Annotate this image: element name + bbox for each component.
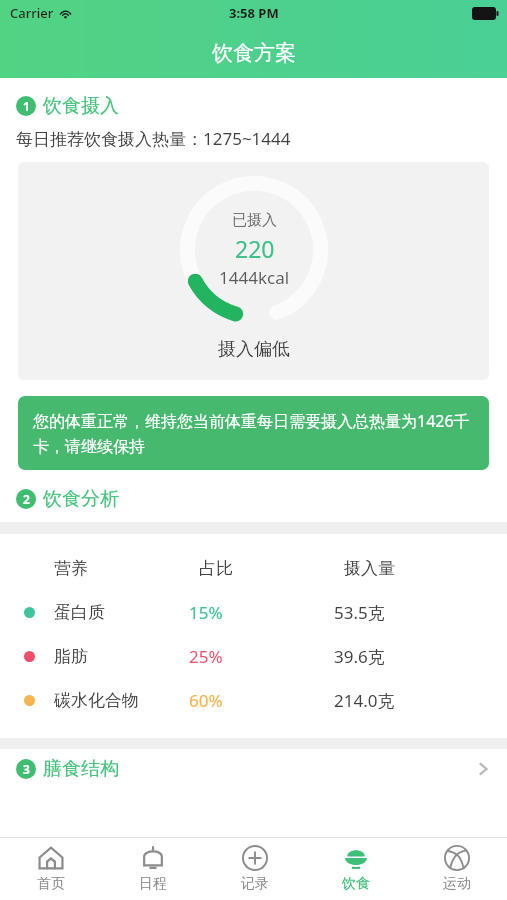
other: 饮食 — [343, 845, 369, 871]
staticText: 53.5克 — [334, 601, 385, 624]
button[interactable]: 记录 — [204, 838, 305, 900]
other: 首页 — [38, 845, 64, 871]
staticText: 1 — [23, 98, 30, 114]
staticText: 您的体重正常，维持您当前体重每日需要摄入总热量为1426千卡，请继续保持 — [33, 410, 474, 456]
other: 记录 — [242, 845, 268, 871]
button[interactable]: 饮食 — [305, 838, 406, 900]
staticText: 60% — [189, 689, 334, 712]
other: 运动 — [444, 845, 470, 871]
staticText: 220 — [235, 233, 275, 264]
button[interactable]: 您的体重正常，维持您当前体重每日需要摄入总热量为1426千卡，请继续保持 — [18, 396, 489, 470]
staticText: 占比 — [199, 558, 344, 579]
other: 日程 — [140, 845, 166, 871]
staticText: Carrier — [10, 4, 54, 22]
staticText: 膳食结构 — [43, 757, 119, 781]
staticText: 39.6克 — [334, 645, 385, 668]
staticText: 1444kcal — [219, 266, 290, 289]
button[interactable]: 1 — [0, 94, 507, 118]
staticText: 营养 — [54, 558, 199, 579]
staticText: 每日推荐饮食摄入热量：1275~1444 — [16, 127, 291, 150]
staticText: 25% — [189, 645, 334, 668]
staticText: 饮食方案 — [212, 40, 296, 66]
staticText: 饮食 — [342, 875, 370, 893]
button[interactable]: 蛋白质 — [0, 601, 507, 624]
staticText: 3 — [23, 761, 30, 777]
staticText: 运动 — [443, 875, 471, 893]
staticText: 摄入量 — [344, 558, 395, 579]
staticText: 脂肪 — [54, 646, 189, 667]
button[interactable]: 日程 — [102, 838, 204, 900]
staticText: 饮食摄入 — [43, 94, 119, 118]
button[interactable]: 3 — [0, 749, 507, 789]
button[interactable]: 首页 — [0, 838, 102, 900]
staticText: 首页 — [37, 875, 65, 893]
staticText: 日程 — [139, 875, 167, 893]
button[interactable]: 2 — [0, 487, 507, 511]
button[interactable]: 运动 — [406, 838, 507, 900]
staticText: 214.0克 — [334, 689, 395, 712]
staticText: 饮食分析 — [43, 487, 119, 511]
staticText: 记录 — [241, 875, 269, 893]
staticText: 3:58 PM — [229, 4, 279, 22]
staticText: 蛋白质 — [54, 602, 189, 623]
button[interactable]: 碳水化合物 — [0, 689, 507, 712]
button[interactable]: 脂肪 — [0, 645, 507, 668]
staticText: 2 — [23, 491, 30, 507]
staticText: 摄入偏低 — [218, 338, 290, 361]
staticText: 碳水化合物 — [54, 690, 189, 711]
staticText: 已摄入 — [232, 211, 277, 230]
staticText: 15% — [189, 601, 334, 624]
